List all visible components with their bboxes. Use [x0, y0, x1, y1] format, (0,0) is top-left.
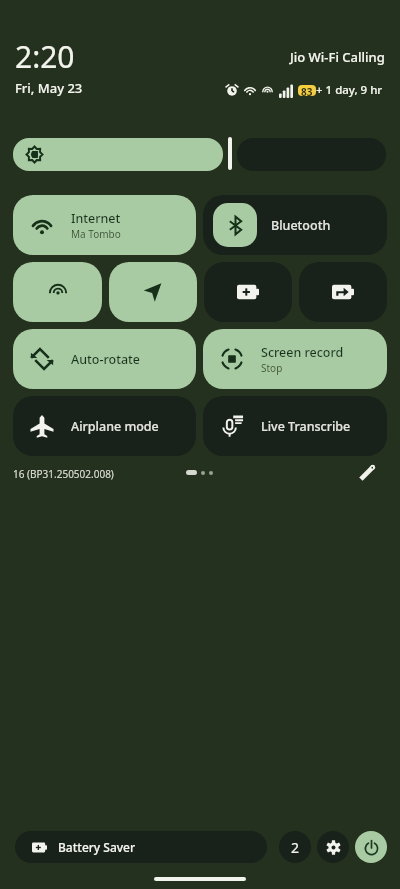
staticText: 2:20 [15, 36, 75, 77]
button[interactable]: Bluetooth [203, 195, 387, 255]
staticText: 83 [301, 85, 313, 96]
staticText: Bluetooth [271, 217, 331, 234]
button[interactable]: Auto-rotate [13, 329, 196, 389]
button[interactable]: Settings [317, 831, 349, 863]
button[interactable]: Airplane mode [13, 396, 196, 456]
staticText: Stop [261, 361, 283, 375]
button[interactable]: Battery Saver [204, 262, 292, 322]
staticText: Fri, May 23 [15, 79, 83, 97]
button[interactable]: Screen record [203, 329, 387, 389]
button[interactable]: Location [109, 262, 197, 322]
button[interactable]: Brightness [13, 138, 223, 171]
staticText: 16 (BP31.250502.008) [13, 467, 114, 481]
button[interactable]: Notifications [279, 831, 311, 863]
staticText: Jio Wi-Fi Calling [290, 48, 385, 66]
staticText: Battery Saver [58, 839, 136, 855]
staticText: Internet [71, 210, 121, 227]
button[interactable]: Battery Saver [15, 831, 267, 863]
staticText: Auto-rotate [71, 351, 141, 368]
button[interactable]: Power [355, 831, 387, 863]
staticText: + 1 day, 9 hr [316, 82, 383, 98]
button[interactable]: Data Saver [299, 262, 387, 322]
staticText: Live Transcribe [261, 418, 351, 435]
button[interactable]: Live Transcribe [203, 396, 387, 456]
staticText: Ma Tombo [71, 227, 121, 241]
button[interactable]: Internet [13, 195, 196, 255]
button[interactable]: Edit [354, 460, 380, 486]
button[interactable]: Hotspot [13, 262, 102, 322]
staticText: 2 [291, 838, 300, 857]
staticText: Airplane mode [71, 418, 159, 435]
staticText: Screen record [261, 344, 344, 361]
